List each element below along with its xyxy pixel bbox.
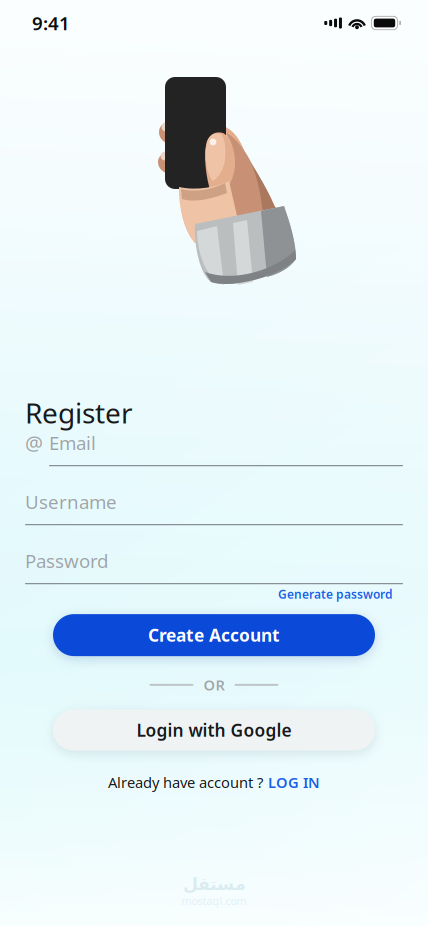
button[interactable]: LOG IN — [268, 773, 320, 792]
button[interactable]: Create Account — [53, 614, 375, 656]
staticText: Email — [49, 430, 96, 455]
staticText: Password — [25, 548, 108, 573]
staticText: @ — [25, 429, 43, 456]
staticText: 9:41 — [32, 11, 70, 35]
staticText: LOG IN — [268, 773, 320, 792]
staticText: mostaql.com — [181, 894, 246, 908]
staticText: Login with Google — [136, 719, 291, 742]
staticText: Create Account — [148, 624, 280, 647]
button[interactable]: Login with Google — [53, 710, 375, 751]
staticText: Username — [25, 489, 117, 514]
staticText: مستقل — [182, 874, 245, 894]
staticText: OR — [203, 675, 224, 695]
staticText: Generate password — [278, 586, 393, 602]
staticText: Already have account ? — [108, 773, 263, 792]
button[interactable]: Generate password — [278, 586, 393, 602]
staticText: Register — [25, 394, 133, 431]
